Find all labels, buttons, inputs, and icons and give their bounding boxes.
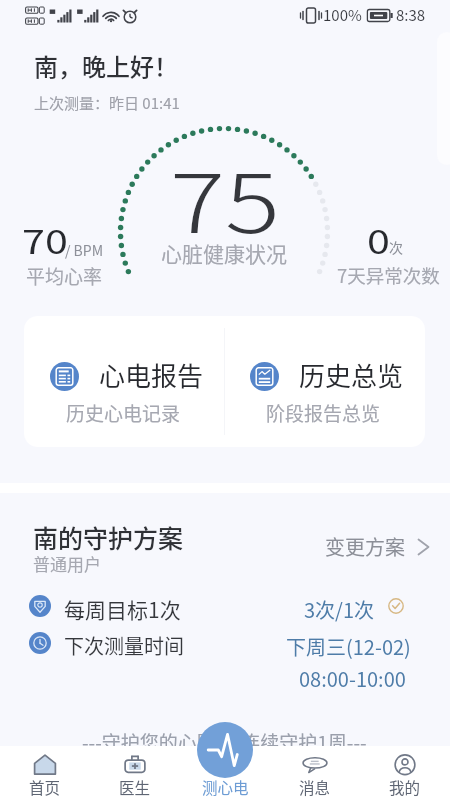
staticText: 普通用户 <box>33 551 101 576</box>
button[interactable]: 测心电 <box>197 722 253 778</box>
staticText: 南的守护方案 <box>33 519 184 555</box>
staticText: 70 <box>22 216 68 264</box>
staticText: 100% <box>323 4 362 26</box>
staticText: 75 <box>170 139 280 256</box>
staticText: 南，晚上好！ <box>34 48 178 83</box>
staticText: 医生 <box>119 776 151 798</box>
button[interactable]: 测心电 <box>180 746 270 800</box>
staticText: / BPM <box>65 240 104 260</box>
staticText: 历史总览 <box>299 356 404 394</box>
button[interactable]: 心电报告 <box>24 316 225 447</box>
button[interactable]: 下次测量时间 <box>0 627 450 693</box>
button[interactable]: 变更方案 <box>325 532 431 561</box>
staticText: 心电报告 <box>99 356 204 394</box>
staticText: 08:00-10:00 <box>299 664 406 693</box>
staticText: 心脏健康状况 <box>161 238 287 268</box>
button[interactable]: 消息 <box>270 746 360 800</box>
staticText: 3次/1次 <box>304 595 375 624</box>
staticText: 上次测量：昨日 01:41 <box>34 92 180 114</box>
staticText: 下周三(12-02) <box>286 632 411 661</box>
staticText: 变更方案 <box>325 532 405 561</box>
button[interactable]: 医生 <box>90 746 180 800</box>
staticText: 阶段报告总览 <box>266 399 381 427</box>
button[interactable]: 每周目标1次 <box>0 590 450 623</box>
staticText: 首页 <box>29 776 61 798</box>
staticText: 7天异常次数 <box>337 262 440 289</box>
staticText: 下次测量时间 <box>64 631 184 660</box>
button[interactable]: 首页 <box>0 746 90 800</box>
button[interactable]: 历史总览 <box>224 316 425 447</box>
staticText: 次 <box>389 237 403 257</box>
button[interactable]: 我的 <box>360 746 450 800</box>
staticText: 我的 <box>389 776 421 798</box>
staticText: 平均心率 <box>26 262 103 290</box>
staticText: 每周目标1次 <box>64 594 181 624</box>
staticText: 8:38 <box>396 4 426 26</box>
staticText: 历史心电记录 <box>66 399 181 427</box>
staticText: 消息 <box>299 776 331 798</box>
staticText: 0 <box>367 216 391 264</box>
staticText: 测心电 <box>202 776 249 798</box>
staticText: ---守护您的心脏 连续守护1周--- <box>82 728 367 756</box>
